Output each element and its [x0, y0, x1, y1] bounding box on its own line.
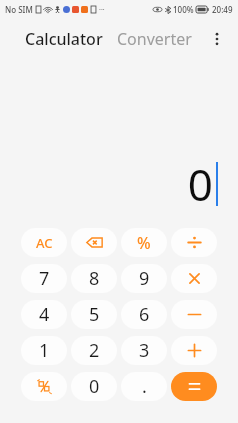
button[interactable]: 1 [21, 336, 67, 365]
staticText: 6 [139, 302, 150, 327]
staticText: 2 [89, 338, 100, 363]
button[interactable]: 4 [21, 300, 67, 329]
button[interactable]: Multiply [171, 264, 217, 293]
staticText: No SIM [5, 4, 33, 15]
button[interactable]: 3 [121, 336, 167, 365]
button[interactable]: Scientific [21, 372, 67, 401]
button[interactable]: Equals [171, 372, 217, 401]
staticText: AC [36, 234, 53, 252]
button[interactable]: 5 [71, 300, 117, 329]
button[interactable]: % [121, 228, 167, 257]
staticText: 9 [139, 266, 150, 291]
staticText: 7 [39, 266, 50, 291]
button[interactable]: Plus [171, 336, 217, 365]
staticText: % [137, 232, 151, 254]
button[interactable]: Backspace [71, 228, 117, 257]
staticText: Converter [117, 28, 192, 50]
staticText: Calculator [25, 28, 103, 50]
button[interactable]: 9 [121, 264, 167, 293]
button[interactable]: 7 [21, 264, 67, 293]
button[interactable]: Calculator [25, 28, 103, 50]
button[interactable]: Divide [171, 228, 217, 257]
button[interactable]: 8 [71, 264, 117, 293]
staticText: 100% [173, 4, 194, 15]
button[interactable]: More options [202, 24, 232, 54]
button[interactable]: 2 [71, 336, 117, 365]
staticText: 0 [187, 154, 213, 214]
staticText: 0 [89, 374, 100, 399]
staticText: . [142, 374, 147, 399]
staticText: 1 [39, 338, 50, 363]
staticText: 4 [39, 302, 50, 327]
staticText: 5 [89, 302, 100, 327]
staticText: 8 [89, 266, 100, 291]
button[interactable]: 6 [121, 300, 167, 329]
staticText: 3 [139, 338, 150, 363]
button[interactable]: Converter [117, 28, 192, 50]
staticText: ··· [99, 5, 105, 15]
staticText: 20:49 [212, 4, 233, 15]
button[interactable]: Minus [171, 300, 217, 329]
button[interactable]: . [121, 372, 167, 401]
button[interactable]: AC [21, 228, 67, 257]
button[interactable]: 0 [71, 372, 117, 401]
